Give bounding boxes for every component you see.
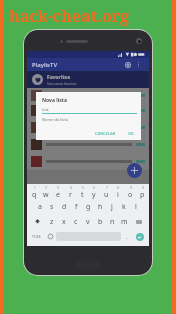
staticText: 5 bbox=[82, 186, 84, 190]
staticText: b bbox=[98, 217, 103, 227]
staticText: q bbox=[32, 190, 37, 200]
button[interactable]: z bbox=[46, 214, 58, 229]
button[interactable]: s bbox=[46, 200, 58, 214]
button[interactable]: 5 bbox=[76, 186, 88, 200]
button[interactable] bbox=[31, 102, 145, 119]
button[interactable]: OK bbox=[125, 130, 137, 137]
staticText: d bbox=[62, 202, 67, 212]
staticText: hack-cheat.org bbox=[9, 5, 130, 27]
button[interactable]: CANCELAR bbox=[92, 130, 119, 137]
staticText: ?123 bbox=[32, 234, 41, 239]
button[interactable]: 4 bbox=[64, 186, 76, 200]
button[interactable]: ?123 bbox=[28, 229, 45, 244]
staticText: v bbox=[86, 217, 90, 227]
staticText: j bbox=[111, 202, 113, 212]
staticText: c bbox=[74, 217, 78, 227]
button[interactable]: h bbox=[94, 200, 106, 214]
staticText: f bbox=[75, 202, 78, 212]
button[interactable]: Shift bbox=[28, 214, 46, 229]
staticText: Favoritos bbox=[47, 74, 71, 81]
staticText: k bbox=[122, 202, 126, 212]
staticText: l bbox=[135, 202, 137, 212]
button[interactable]: 9 bbox=[124, 186, 136, 200]
staticText: ↵ bbox=[138, 235, 142, 240]
staticText: o bbox=[128, 190, 133, 200]
staticText: x bbox=[62, 217, 66, 227]
staticText: g bbox=[86, 202, 91, 212]
button[interactable]: f bbox=[70, 200, 82, 214]
staticText: i bbox=[117, 190, 119, 200]
button[interactable]: m bbox=[118, 214, 130, 229]
button[interactable]: n bbox=[106, 214, 118, 229]
button[interactable]: 7 bbox=[100, 186, 112, 200]
staticText: 7 bbox=[106, 186, 108, 190]
button[interactable]: Favoritos bbox=[32, 71, 144, 88]
staticText: 9 bbox=[130, 186, 132, 190]
button[interactable]: 0 bbox=[136, 186, 148, 200]
staticText: 1 bbox=[34, 186, 36, 190]
button[interactable]: j bbox=[106, 200, 118, 214]
staticText: h bbox=[98, 202, 103, 212]
staticText: y bbox=[92, 190, 96, 200]
button[interactable]: 1 bbox=[28, 186, 40, 200]
staticText: Nova lista bbox=[42, 97, 67, 104]
button[interactable] bbox=[31, 119, 145, 136]
button[interactable]: 6 bbox=[88, 186, 100, 200]
staticText: a bbox=[38, 202, 42, 212]
staticText: t bbox=[81, 190, 84, 200]
staticText: 2 bbox=[45, 186, 47, 190]
staticText: 8 bbox=[117, 186, 119, 190]
staticText: 6 bbox=[93, 186, 95, 190]
staticText: CANCELAR bbox=[95, 131, 116, 136]
button[interactable]: g bbox=[82, 200, 94, 214]
staticText: w bbox=[43, 190, 49, 200]
button[interactable]: 8 bbox=[112, 186, 124, 200]
button[interactable]: l bbox=[130, 200, 142, 214]
staticText: s bbox=[50, 202, 54, 212]
staticText: PlaylisTV bbox=[32, 61, 58, 69]
button[interactable]: x bbox=[58, 214, 70, 229]
button[interactable]: c bbox=[70, 214, 82, 229]
button[interactable]: Settings bbox=[122, 59, 133, 70]
staticText: m bbox=[121, 217, 128, 227]
staticText: u bbox=[104, 190, 109, 200]
staticText: 4 bbox=[70, 186, 72, 190]
button[interactable]: v bbox=[82, 214, 94, 229]
staticText: Lista bbox=[42, 108, 49, 112]
button[interactable]: a bbox=[34, 200, 46, 214]
button[interactable] bbox=[31, 88, 145, 102]
staticText: Seus canais favoritos bbox=[47, 82, 77, 86]
button[interactable] bbox=[31, 136, 145, 153]
button[interactable]: 3 bbox=[52, 186, 64, 200]
button[interactable]: Backspace bbox=[130, 214, 148, 229]
button[interactable]: Add list bbox=[127, 163, 142, 178]
button[interactable] bbox=[31, 153, 145, 170]
staticText: p bbox=[140, 190, 145, 200]
staticText: 3 bbox=[57, 186, 59, 190]
staticText: . bbox=[126, 233, 128, 241]
staticText: r bbox=[69, 190, 72, 200]
button[interactable]: d bbox=[58, 200, 70, 214]
staticText: Nome da lista bbox=[42, 117, 68, 122]
staticText: OK bbox=[128, 131, 134, 136]
staticText: n bbox=[110, 217, 115, 227]
staticText: z bbox=[50, 217, 54, 227]
button[interactable]: Emoji bbox=[45, 229, 56, 244]
button[interactable]: k bbox=[118, 200, 130, 214]
button[interactable]: 2 bbox=[40, 186, 52, 200]
staticText: 0 bbox=[142, 186, 144, 190]
button[interactable]: . bbox=[121, 229, 132, 244]
button[interactable]: More options bbox=[133, 59, 144, 70]
button[interactable]: Enter bbox=[136, 233, 144, 241]
staticText: e bbox=[56, 190, 60, 200]
button[interactable]: b bbox=[94, 214, 106, 229]
